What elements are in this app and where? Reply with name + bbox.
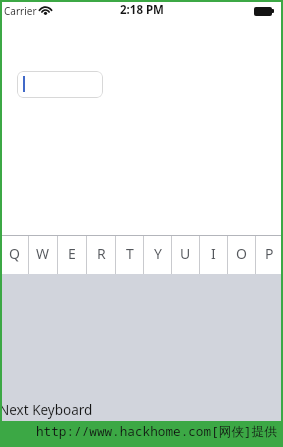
button[interactable]: O (228, 236, 255, 274)
button[interactable]: W (29, 236, 57, 274)
staticText: T (126, 244, 134, 263)
staticText: W (36, 244, 50, 263)
staticText: I (211, 244, 216, 263)
button[interactable]: U (172, 236, 199, 274)
button[interactable]: E (58, 236, 86, 274)
staticText: Carrier (4, 4, 37, 18)
staticText: 2:18 PM (120, 2, 164, 18)
button[interactable] (17, 71, 103, 98)
staticText: Y (154, 244, 162, 263)
button[interactable]: T (116, 236, 143, 274)
button[interactable]: Q (0, 236, 28, 274)
staticText: Q (9, 244, 20, 263)
staticText: P (265, 244, 274, 263)
button[interactable]: R (87, 236, 115, 274)
staticText: Next Keyboard (0, 401, 93, 419)
staticText: O (236, 244, 247, 263)
button[interactable]: I (200, 236, 227, 274)
button[interactable]: Y (144, 236, 171, 274)
button[interactable]: Next Keyboard (0, 403, 94, 421)
staticText: R (97, 244, 106, 263)
staticText: http://www.hackhome.com[网侠]提供 (36, 422, 278, 439)
staticText: U (180, 244, 191, 263)
staticText: E (68, 244, 76, 263)
button[interactable]: P (256, 236, 283, 274)
